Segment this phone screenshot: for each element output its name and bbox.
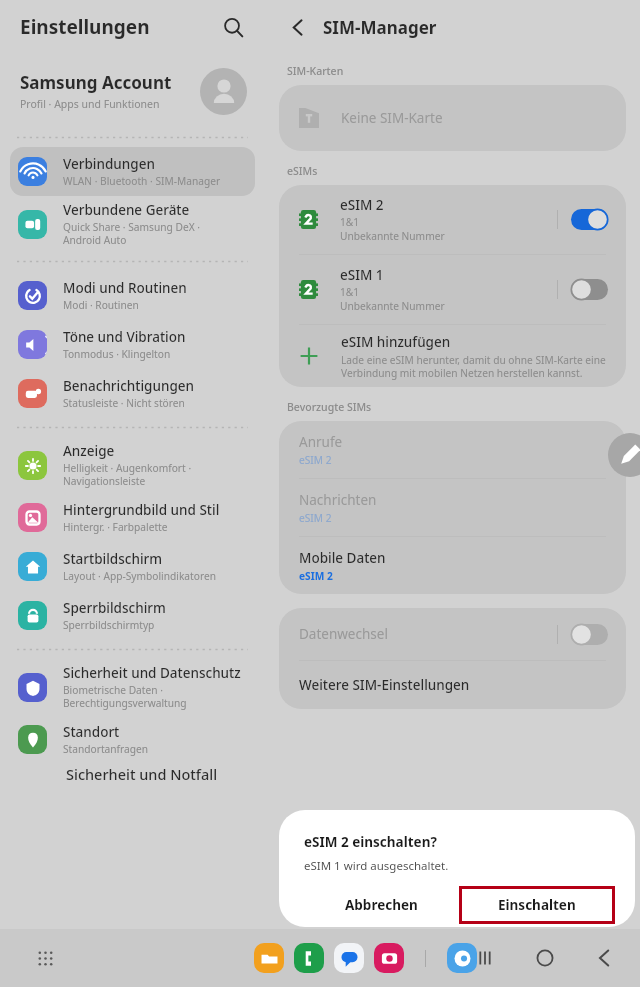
staticText: Biometrische Daten · Berechtigungsverwal… [63, 683, 187, 710]
button[interactable]: Keine SIM-Karte [279, 85, 626, 151]
button[interactable]: Verbindungen [10, 147, 255, 196]
button[interactable]: Zurück [281, 10, 315, 44]
button[interactable]: Anrufe [279, 421, 626, 478]
staticText: eSIM hinzufügen [341, 333, 451, 351]
staticText: Unbekannte Nummer [340, 229, 445, 243]
staticText: Hintergrundbild und Stil [63, 501, 220, 519]
button[interactable]: Eigene Dateien [254, 943, 284, 973]
staticText: Sicherheit und Notfall [66, 764, 218, 784]
staticText: Abbrechen [345, 896, 418, 914]
button[interactable]: Töne und Vibration [10, 320, 255, 369]
staticText: eSIM 1 [340, 266, 384, 284]
button[interactable]: Abbrechen [304, 886, 459, 924]
staticText: Keine SIM-Karte [341, 109, 443, 127]
staticText: eSIM 1 wird ausgeschaltet. [304, 858, 449, 874]
staticText: Benachrichtigungen [63, 377, 195, 395]
button[interactable]: Hintergrundbild und Stil [10, 493, 255, 542]
staticText: eSIM 2 [299, 569, 333, 583]
staticText: Modi · Routinen [63, 298, 139, 312]
staticText: Einschalten [498, 896, 576, 914]
button[interactable]: Standort [10, 715, 255, 764]
staticText: eSIM 2 [299, 511, 332, 525]
button[interactable]: Suchen [215, 9, 251, 45]
staticText: eSIM 2 [340, 196, 384, 214]
staticText: Modi und Routinen [63, 279, 187, 297]
button[interactable]: Startbildschirm [10, 542, 255, 591]
staticText: Weitere SIM-Einstellungen [299, 676, 470, 694]
staticText: Standort [63, 723, 120, 741]
staticText: Sicherheit und Datenschutz [63, 664, 241, 682]
button[interactable]: Datenwechsel [279, 608, 626, 660]
staticText: Hintergr. · Farbpalette [63, 520, 168, 534]
button[interactable]: Startseite [528, 941, 562, 975]
button[interactable]: Verbundene Geräte [10, 196, 255, 252]
button[interactable]: Telefon [294, 943, 324, 973]
staticText: Sperrbildschirm [63, 599, 166, 617]
staticText: SIM-Manager [323, 16, 437, 39]
button[interactable]: Nachrichten [279, 479, 626, 536]
staticText: Statusleiste · Nicht stören [63, 396, 185, 410]
button[interactable]: Nachrichten [334, 943, 364, 973]
staticText: Profil · Apps und Funktionen [20, 97, 160, 111]
button[interactable]: Einschalten [459, 886, 615, 924]
button[interactable]: Aus [571, 279, 608, 300]
staticText: Verbindungen [63, 155, 155, 173]
button[interactable]: Sicherheit und Datenschutz [10, 659, 255, 715]
staticText: Töne und Vibration [63, 328, 186, 346]
staticText: Layout · App-Symbolindikatoren [63, 569, 216, 583]
button[interactable]: Modi und Routinen [10, 271, 255, 320]
staticText: Unbekannte Nummer [340, 299, 445, 313]
button[interactable]: Samsung Account [20, 54, 247, 128]
staticText: Quick Share · Samsung DeX · Android Auto [63, 220, 200, 247]
staticText: Standortanfragen [63, 742, 149, 756]
staticText: Datenwechsel [299, 625, 388, 643]
staticText: Sperrbildschirmtyp [63, 618, 155, 632]
staticText: Startbildschirm [63, 550, 163, 568]
button[interactable]: Zurück [588, 941, 622, 975]
staticText: Anrufe [299, 433, 343, 451]
staticText: 1&1 [340, 285, 360, 299]
staticText: WLAN · Bluetooth · SIM-Manager [63, 174, 221, 188]
staticText: Samsung Account [20, 71, 172, 94]
staticText: Helligkeit · Augenkomfort · Navigationsl… [63, 461, 192, 488]
staticText: SIM-Karten [287, 64, 344, 78]
staticText: Verbundene Geräte [63, 201, 190, 219]
button[interactable]: Instagram [374, 943, 404, 973]
button[interactable]: Anzeige [10, 437, 255, 493]
button[interactable]: Ein [571, 209, 608, 230]
staticText: Einstellungen [20, 14, 150, 40]
button[interactable]: Bixby [447, 943, 477, 973]
staticText: Bevorzugte SIMs [287, 400, 372, 414]
button[interactable]: Bearbeiten [608, 433, 640, 477]
staticText: Tonmodus · Klingelton [63, 347, 171, 361]
staticText: Mobile Daten [299, 549, 386, 567]
staticText: Anzeige [63, 442, 115, 460]
button[interactable]: Benachrichtigungen [10, 369, 255, 418]
button[interactable]: Weitere SIM-Einstellungen [279, 661, 626, 709]
button[interactable]: Apps [30, 943, 60, 973]
button[interactable]: Letzte Apps [468, 941, 502, 975]
staticText: Lade eine eSIM herunter, damit du ohne S… [341, 353, 606, 380]
staticText: eSIM 2 einschalten? [304, 833, 437, 851]
button[interactable]: Sperrbildschirm [10, 591, 255, 640]
button[interactable]: eSIM 1 [279, 255, 626, 324]
button[interactable]: Mobile Daten [279, 537, 626, 594]
button[interactable]: eSIM hinzufügen [279, 325, 626, 387]
staticText: eSIM 2 [299, 453, 332, 467]
button[interactable]: Aus [571, 624, 608, 645]
button[interactable]: eSIM 2 [279, 185, 626, 254]
staticText: 1&1 [340, 215, 360, 229]
staticText: eSIMs [287, 164, 318, 178]
staticText: Nachrichten [299, 491, 377, 509]
